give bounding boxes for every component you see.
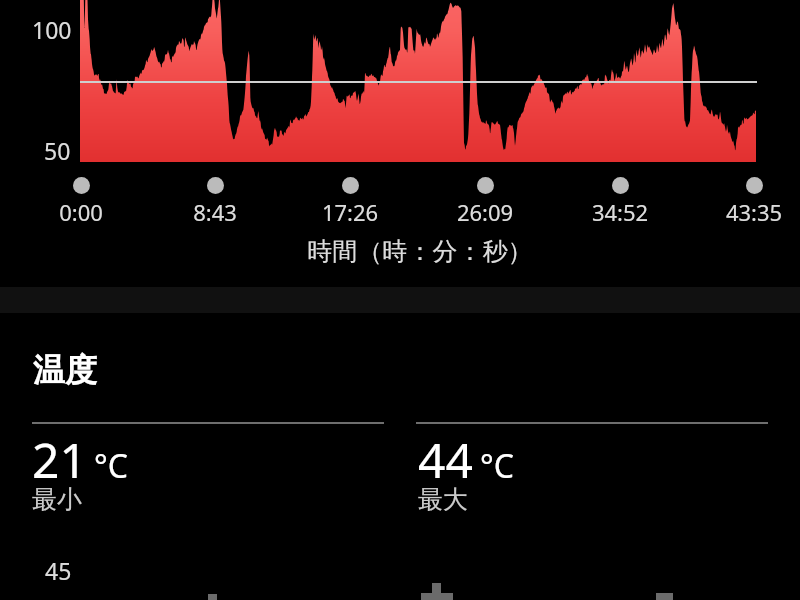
staticText: °C — [480, 444, 514, 488]
staticText: 8:43 — [145, 197, 285, 227]
staticText: 21 — [32, 427, 87, 492]
staticText: 100 — [32, 14, 72, 45]
staticText: 44 — [418, 427, 473, 492]
staticText: 45 — [45, 555, 72, 586]
button[interactable]: 21 — [32, 422, 384, 487]
staticText: °C — [94, 444, 128, 488]
staticText: 0:00 — [11, 197, 151, 227]
staticText: 50 — [44, 135, 71, 166]
button[interactable]: 温度 — [0, 313, 800, 600]
staticText: 34:52 — [550, 197, 690, 227]
button[interactable]: 44 — [416, 422, 768, 487]
staticText: 17:26 — [280, 197, 420, 227]
staticText: 最大 — [418, 484, 468, 515]
staticText: 時間（時：分：秒） — [20, 236, 800, 267]
staticText: 温度 — [33, 350, 97, 390]
button[interactable]: 心拍数グラフ — [0, 0, 800, 287]
staticText: 43:35 — [684, 197, 800, 227]
staticText: 最小 — [32, 484, 82, 515]
staticText: 26:09 — [415, 197, 555, 227]
